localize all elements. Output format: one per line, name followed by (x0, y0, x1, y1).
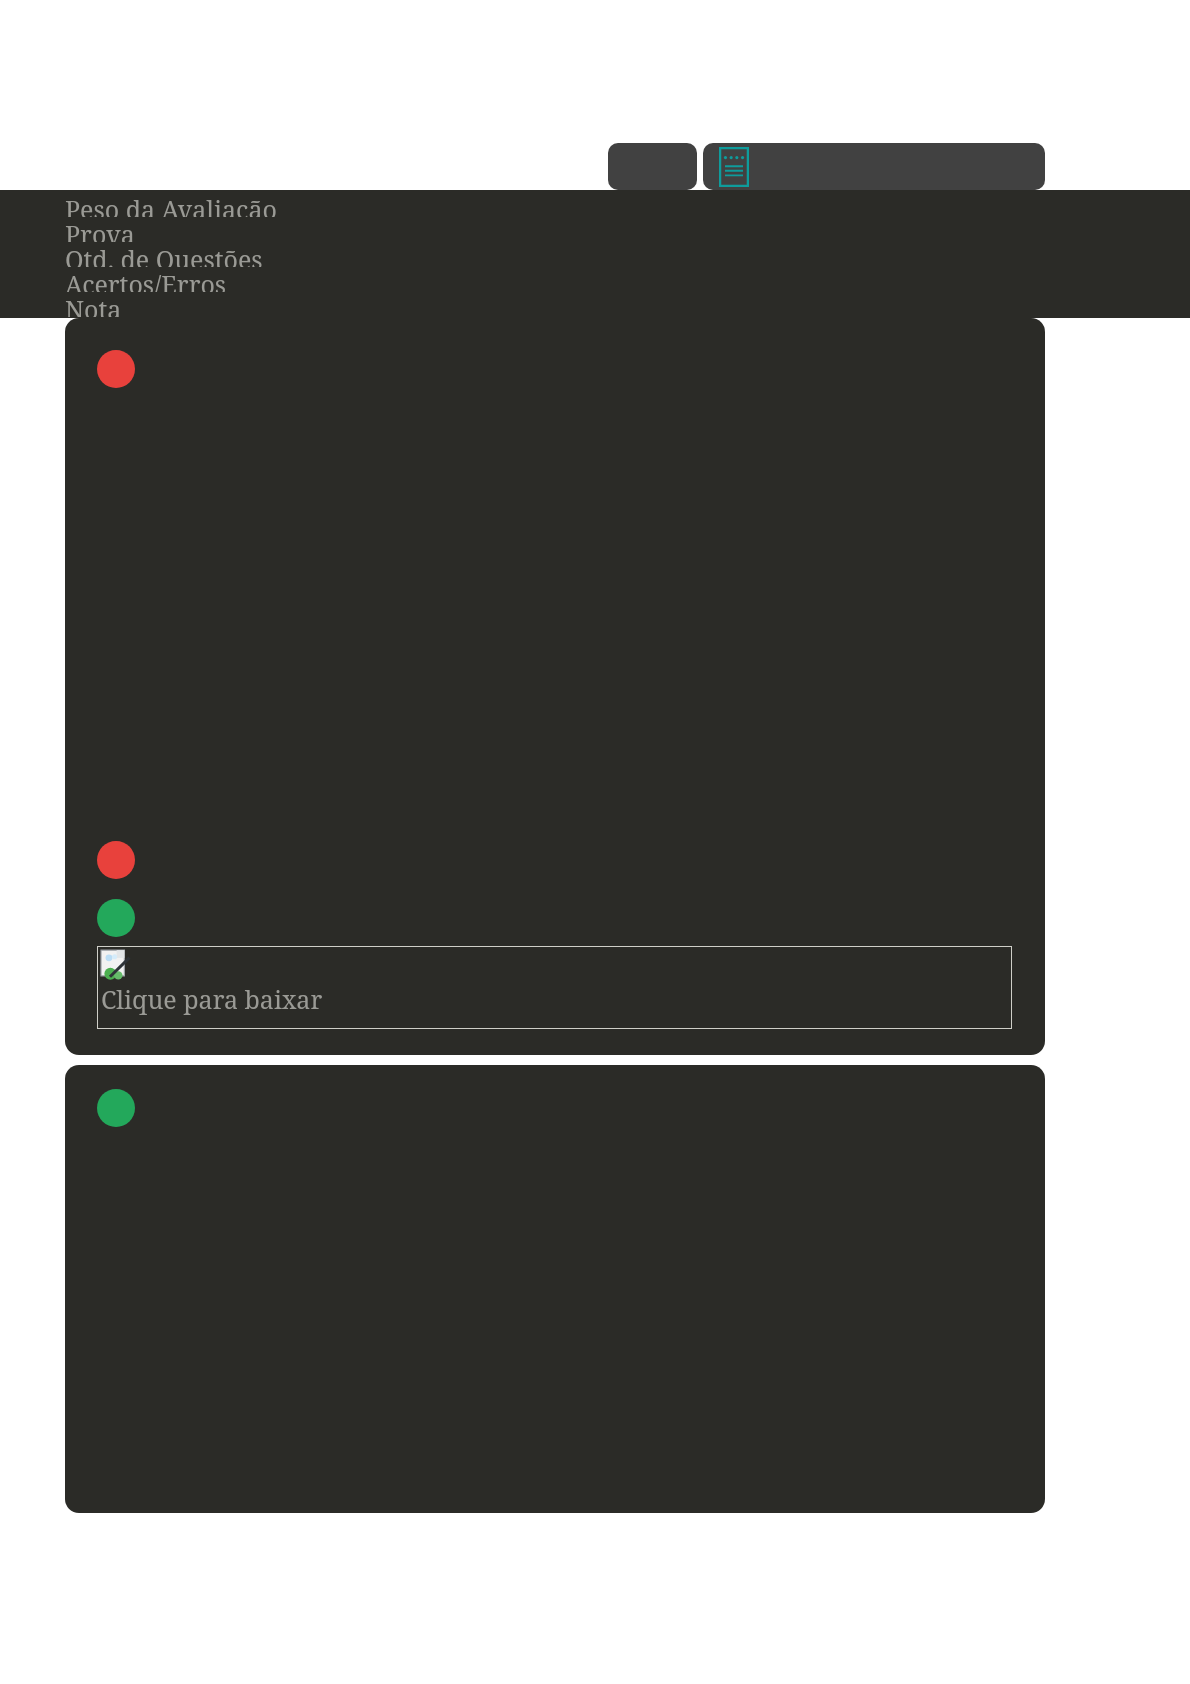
button[interactable]: Aba (608, 143, 697, 190)
staticText: Acertos/Erros (65, 267, 227, 292)
staticText: Nota (65, 292, 122, 317)
staticText: Prova (65, 217, 135, 242)
button[interactable] (65, 1065, 1045, 1513)
button[interactable]: Gabarito (703, 143, 1045, 190)
staticText: Clique para baixar (101, 982, 323, 1016)
staticText: Qtd. de Questões (65, 242, 263, 267)
button[interactable]: Clique para baixar (97, 946, 1012, 1029)
staticText: Peso da Avaliação (65, 192, 277, 217)
button[interactable]: Clique para baixar (65, 318, 1045, 1055)
